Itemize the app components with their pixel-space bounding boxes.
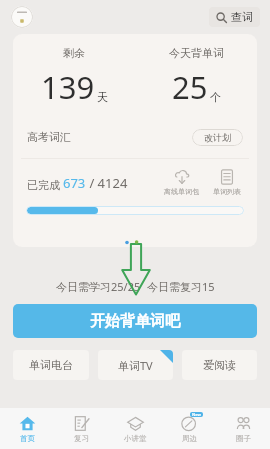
staticText: 小讲堂 <box>124 434 147 443</box>
staticText: 今天背单词 <box>169 46 224 60</box>
staticText: 今日需复习15 <box>147 279 215 294</box>
staticText: 单词电台 <box>29 358 73 372</box>
staticText: 圈子 <box>236 434 251 443</box>
staticText: 首页 <box>20 434 35 443</box>
staticText: 单词TV <box>118 358 153 373</box>
staticText: 查词 <box>231 10 253 24</box>
button[interactable]: 小讲堂 <box>108 408 162 449</box>
button[interactable]: New <box>162 408 216 449</box>
button[interactable]: 圈子 <box>216 408 270 449</box>
button[interactable]: 今天背单词 <box>135 34 257 108</box>
button[interactable]: 复习 <box>54 408 108 449</box>
staticText: 139 <box>41 66 95 108</box>
staticText: 高考词汇 <box>27 130 71 144</box>
button[interactable]: Profile <box>11 6 33 28</box>
button[interactable]: 爱阅读 <box>182 350 257 380</box>
staticText: 改计划 <box>204 132 231 143</box>
button[interactable]: 单词列表 <box>211 169 243 196</box>
staticText: 复习 <box>74 434 89 443</box>
staticText: 天 <box>97 90 108 104</box>
button[interactable]: 改计划 <box>192 129 243 146</box>
button[interactable]: 查词 <box>209 7 260 27</box>
staticText: 个 <box>210 90 221 104</box>
staticText: 673 <box>63 174 86 192</box>
staticText: 离线单词包 <box>164 187 199 196</box>
staticText: 单词列表 <box>213 187 241 196</box>
button[interactable]: 今日需学习25/25 <box>56 279 141 294</box>
staticText: / 4124 <box>86 174 128 192</box>
button[interactable]: 开始背单词吧 <box>13 304 257 338</box>
button[interactable]: 首页 <box>0 408 54 449</box>
button[interactable]: 离线单词包 <box>162 169 201 196</box>
button[interactable]: 高考词汇 <box>27 130 71 144</box>
staticText: 今日需学习25/25 <box>56 279 141 294</box>
button[interactable]: 今日需复习15 <box>147 279 215 294</box>
staticText: 开始背单词吧 <box>90 312 180 331</box>
staticText: 已完成 <box>27 177 63 192</box>
staticText: 25 <box>172 66 208 108</box>
button[interactable]: 剩余 <box>13 34 135 108</box>
staticText: 爱阅读 <box>203 358 236 372</box>
staticText: New <box>192 412 201 417</box>
staticText: 周边 <box>182 434 197 443</box>
staticText: 剩余 <box>63 46 85 60</box>
button[interactable]: 单词电台 <box>13 350 89 380</box>
button[interactable]: 单词TV <box>98 350 173 380</box>
